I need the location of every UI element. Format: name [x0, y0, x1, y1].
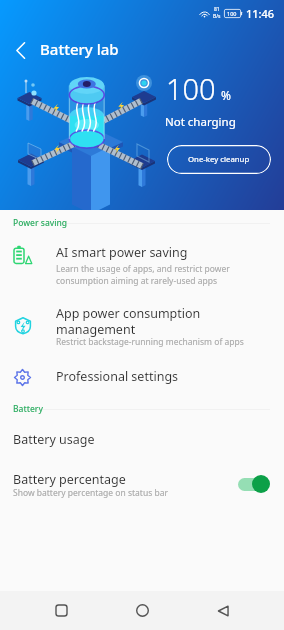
button[interactable]: Recents: [41, 591, 81, 630]
button[interactable]: Battery percentage toggle: [236, 474, 272, 494]
button[interactable]: Back: [4, 34, 36, 66]
button[interactable]: [0, 420, 284, 458]
staticText: 100: [166, 69, 216, 108]
staticText: App power consumption management: [56, 305, 236, 337]
button[interactable]: [0, 357, 284, 399]
staticText: AI smart power saving: [56, 244, 188, 261]
staticText: Show battery percentage on status bar: [13, 487, 168, 499]
staticText: 81: [214, 6, 220, 13]
staticText: Professional settings: [56, 368, 179, 385]
staticText: Learn the usage of apps, and restrict po…: [56, 263, 234, 286]
button[interactable]: [0, 295, 284, 353]
button[interactable]: [0, 231, 284, 289]
staticText: Battery lab: [40, 39, 119, 59]
staticText: One-key cleanup: [188, 154, 250, 165]
button[interactable]: One-key cleanup: [167, 145, 271, 174]
staticText: Power saving: [13, 217, 68, 229]
staticText: Battery percentage: [13, 471, 126, 488]
button[interactable]: Home: [122, 591, 162, 630]
staticText: Restrict backstage-running mechanism of …: [56, 336, 244, 348]
staticText: %: [221, 87, 231, 103]
staticText: B/s: [213, 13, 221, 20]
button[interactable]: [0, 464, 284, 508]
button[interactable]: Back: [203, 591, 243, 630]
staticText: 100: [227, 10, 237, 17]
staticText: Battery usage: [13, 431, 95, 448]
staticText: 11:46: [246, 6, 275, 21]
staticText: Not charging: [165, 114, 236, 130]
staticText: Battery: [13, 403, 43, 415]
